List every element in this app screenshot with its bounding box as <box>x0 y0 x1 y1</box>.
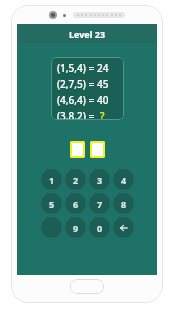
staticText: 9 <box>73 222 79 234</box>
staticText: 24 <box>97 61 109 75</box>
button[interactable]: 4 <box>113 169 134 190</box>
staticText: (2,7,5) = <box>57 77 97 91</box>
staticText: 4 <box>121 174 127 186</box>
staticText: (1,5,4) = <box>57 61 97 75</box>
button[interactable]: 6 <box>65 193 86 214</box>
staticText: 6 <box>73 198 79 210</box>
button[interactable]: 5 <box>41 193 62 214</box>
staticText: (3,8,2) = <box>57 109 100 120</box>
button[interactable]: Backspace <box>113 217 134 238</box>
staticText: 1 <box>49 174 55 186</box>
button[interactable]: 1 <box>41 169 62 190</box>
button[interactable]: 2 <box>65 169 86 190</box>
button[interactable]: 8 <box>113 193 134 214</box>
button[interactable]: Answer digit <box>70 141 85 158</box>
staticText: 7 <box>97 198 103 210</box>
staticText: 3 <box>97 174 103 186</box>
staticText: 0 <box>97 222 103 234</box>
staticText: 40 <box>97 93 109 107</box>
button[interactable]: 3 <box>89 169 110 190</box>
staticText: 45 <box>97 77 109 91</box>
staticText: 2 <box>73 174 79 186</box>
button[interactable]: 9 <box>65 217 86 238</box>
button[interactable]: 7 <box>89 193 110 214</box>
staticText: ? <box>100 109 105 120</box>
button[interactable]: Empty <box>41 217 62 238</box>
staticText: (4,6,4) = <box>57 93 97 107</box>
staticText: 8 <box>121 198 127 210</box>
staticText: 5 <box>49 198 55 210</box>
button[interactable]: Home <box>70 279 104 294</box>
button[interactable]: Answer digit <box>90 141 105 158</box>
button[interactable]: 0 <box>89 217 110 238</box>
staticText: Level 23 <box>69 28 106 40</box>
